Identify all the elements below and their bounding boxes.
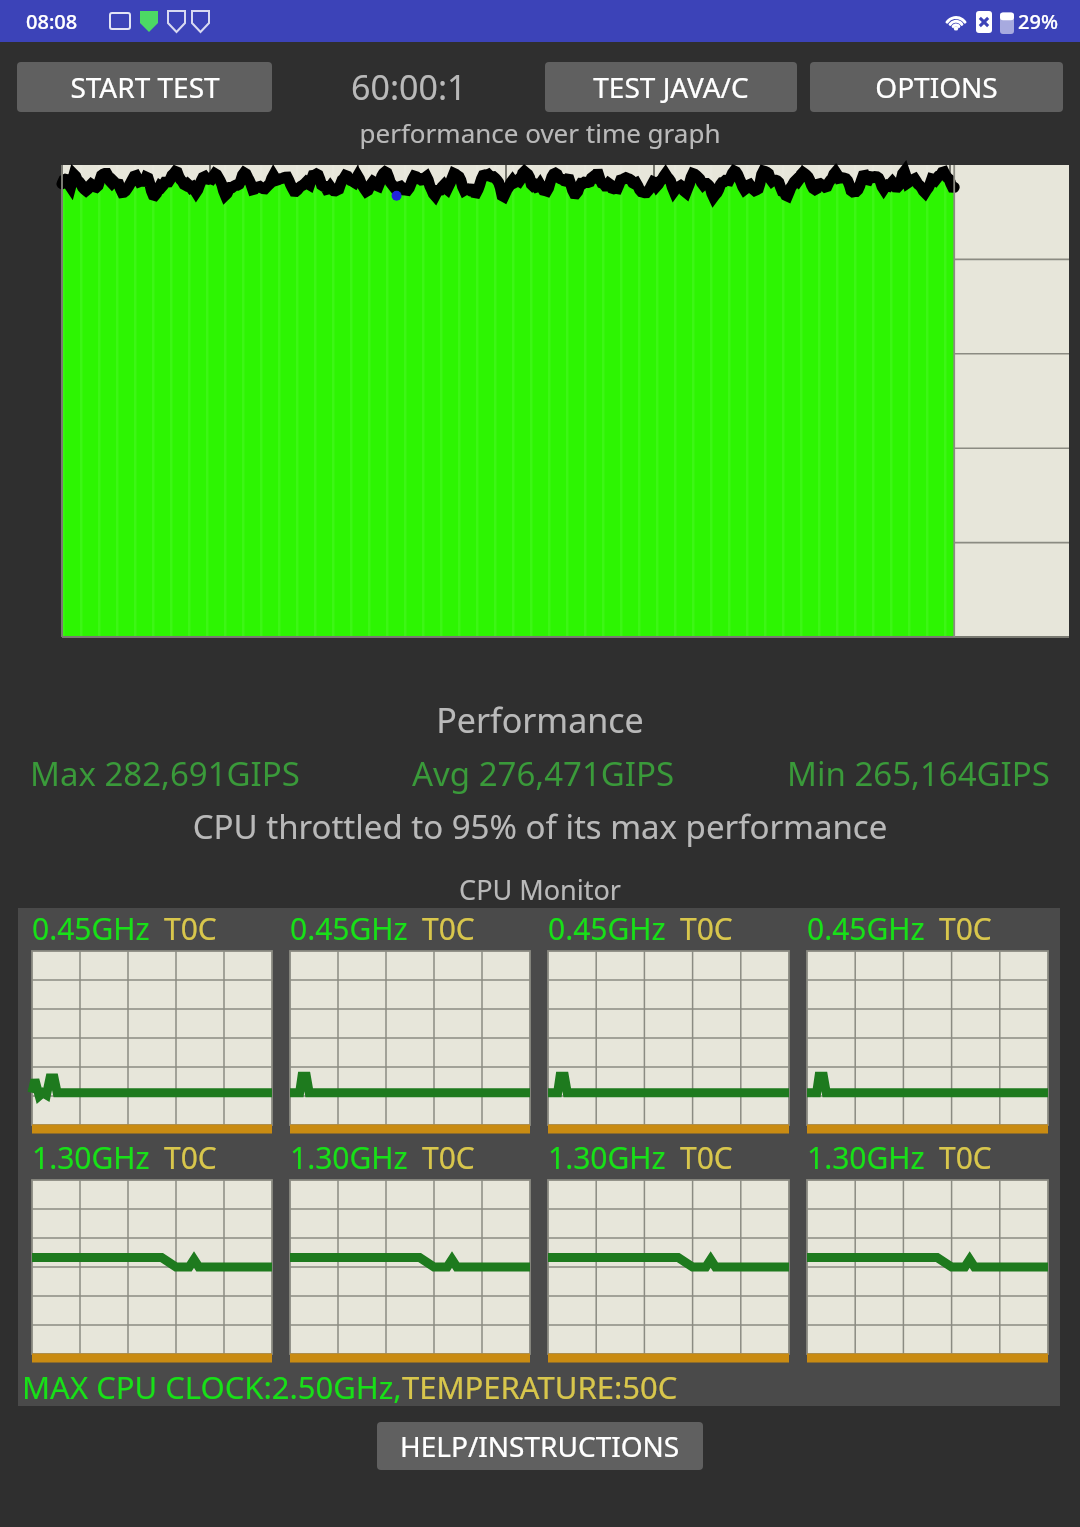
staticText: T0C [164, 908, 217, 949]
staticText: 0.45GHz [807, 908, 925, 949]
staticText: CPU throttled to 95% of its max performa… [0, 804, 1080, 849]
button[interactable]: START TEST [17, 62, 272, 112]
staticText: T0C [680, 1137, 733, 1178]
staticText: 1.30GHz [807, 1137, 925, 1178]
staticText: 0.45GHz [548, 908, 666, 949]
staticText: performance over time graph [0, 115, 1080, 150]
staticText: MAX CPU CLOCK:2.50GHz, [22, 1366, 402, 1406]
staticText: Min 265,164GIPS [787, 751, 1050, 796]
staticText: CPU Monitor [0, 871, 1080, 908]
staticText: Max 282,691GIPS [30, 751, 300, 796]
staticText: OPTIONS [875, 68, 998, 106]
staticText: 0.45GHz [32, 908, 150, 949]
staticText: T0C [939, 908, 992, 949]
staticText: 0.45GHz [290, 908, 408, 949]
staticText: 60:00:1 [351, 64, 467, 110]
staticText: 29% [1018, 8, 1058, 35]
staticText: T0C [164, 1137, 217, 1178]
staticText: 1.30GHz [548, 1137, 666, 1178]
staticText: 1.30GHz [32, 1137, 150, 1178]
staticText: HELP/INSTRUCTIONS [400, 1427, 680, 1465]
staticText: T0C [939, 1137, 992, 1178]
staticText: 08:08 [26, 8, 78, 35]
staticText: TEST JAVA/C [593, 68, 749, 106]
staticText: T0C [422, 1137, 475, 1178]
button[interactable]: HELP/INSTRUCTIONS [377, 1422, 703, 1470]
staticText: T0C [680, 908, 733, 949]
staticText: 1.30GHz [290, 1137, 408, 1178]
staticText: T0C [422, 908, 475, 949]
button[interactable]: TEST JAVA/C [545, 62, 797, 112]
staticText: TEMPERATURE:50C [402, 1366, 678, 1406]
staticText: Avg 276,471GIPS [412, 751, 675, 796]
staticText: Performance [0, 697, 1080, 743]
staticText: START TEST [70, 68, 220, 106]
button[interactable]: OPTIONS [810, 62, 1063, 112]
